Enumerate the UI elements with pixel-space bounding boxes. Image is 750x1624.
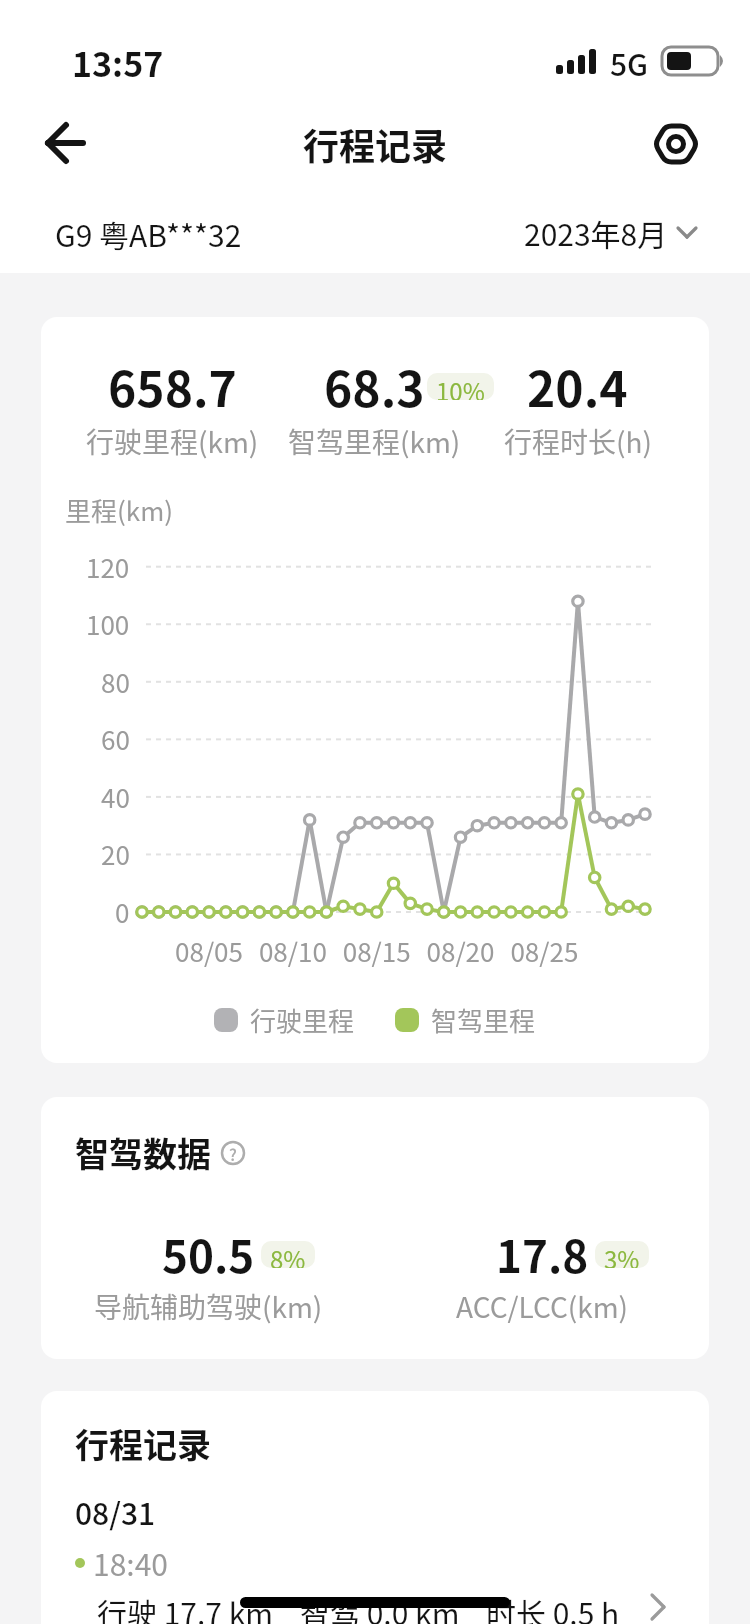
staticText: 行驶里程	[250, 1001, 355, 1039]
staticText: 5G	[610, 41, 649, 84]
button[interactable]: 2023年8月	[524, 205, 698, 259]
staticText: 2023年8月	[524, 211, 668, 254]
staticText: 17.8	[496, 1222, 589, 1286]
button[interactable]	[30, 110, 96, 176]
staticText: 行程时长(h)	[504, 421, 652, 462]
button[interactable]: ?	[221, 1141, 245, 1165]
staticText: ?	[229, 1142, 237, 1165]
staticText: 智驾 0.0 km	[300, 1590, 460, 1624]
staticText: 智驾数据	[75, 1128, 211, 1177]
staticText: 行程记录	[303, 118, 448, 170]
staticText: 行驶里程(km)	[86, 421, 259, 462]
staticText: 20.4	[527, 351, 628, 421]
staticText: 导航辅助驾驶(km)	[94, 1286, 323, 1327]
staticText: 658.7	[108, 351, 237, 421]
staticText: 行程记录	[75, 1419, 211, 1468]
staticText: 智驾里程	[431, 1001, 536, 1039]
button[interactable]: 行驶 17.7 km	[97, 1590, 669, 1624]
button[interactable]	[645, 113, 707, 175]
staticText: 8%	[270, 1241, 306, 1268]
staticText: 08/31	[75, 1490, 156, 1533]
staticText: 18:40	[93, 1541, 168, 1584]
staticText: 时长 0.5 h	[486, 1590, 620, 1624]
staticText: G9 粤AB***32	[55, 212, 242, 255]
staticText: 50.5	[162, 1222, 255, 1286]
staticText: 行驶 17.7 km	[97, 1590, 274, 1624]
staticText: 智驾里程(km)	[288, 421, 461, 462]
staticText: 10%	[436, 373, 485, 400]
staticText: ACC/LCC(km)	[456, 1286, 629, 1327]
staticText: 13:57	[72, 38, 164, 87]
staticText: 3%	[604, 1241, 640, 1268]
staticText: 68.3	[324, 351, 425, 421]
